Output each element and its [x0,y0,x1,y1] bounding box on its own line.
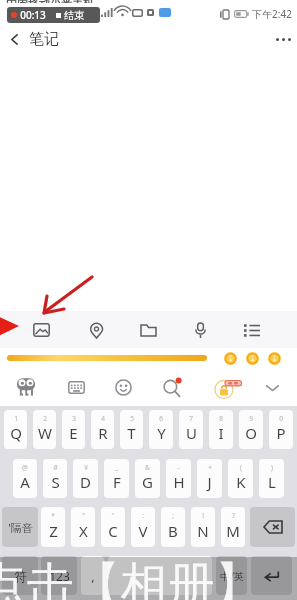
staticText: ! [202,511,204,520]
button[interactable]: - [166,459,191,498]
staticText: K [236,472,246,492]
staticText: Y [157,423,166,443]
button[interactable]: 符 [2,556,38,595]
staticText: 下午2:42 [252,7,292,21]
staticText: # [53,463,58,472]
staticText: T [127,423,136,443]
staticText: * [51,511,55,520]
button[interactable]: ! [191,507,215,547]
button[interactable]: ; [161,507,185,547]
button[interactable]: Space [108,556,212,595]
staticText: 点击【相册】上 [0,556,269,600]
button[interactable]: 5 [120,410,143,449]
button[interactable]: 3 [62,410,85,449]
staticText: L [268,472,276,492]
button[interactable]: ( [228,459,253,498]
button[interactable]: : [131,507,155,547]
button[interactable]: 中/英 [216,556,247,595]
button[interactable]: '隔音 [2,507,38,547]
staticText: 1 [14,414,18,423]
staticText: ) [271,463,273,472]
staticText: U [186,423,197,443]
staticText: G [142,472,153,492]
staticText: '隔音 [8,520,33,535]
staticText: Q [10,423,22,443]
staticText: V [138,521,148,541]
button[interactable]: 2 [33,410,56,449]
button[interactable]: ? [221,507,245,547]
staticText: ' [112,511,114,520]
staticText: 0 [279,414,283,423]
staticText: C [108,521,118,541]
button[interactable]: More options [269,25,297,53]
staticText: @ [22,463,28,472]
button[interactable]: Location [81,315,111,345]
staticText: J [207,472,212,492]
staticText: A [20,472,30,492]
button[interactable]: Store [209,369,245,405]
staticText: 7 [189,414,193,423]
button[interactable]: 4 [91,410,114,449]
button[interactable]: 8 [209,410,233,449]
staticText: E [69,423,78,443]
button[interactable]: @ [13,459,37,498]
button[interactable]: Backspace [250,507,295,547]
button[interactable]: Back [0,25,65,53]
button[interactable]: , [81,556,104,595]
staticText: , [91,567,95,585]
staticText: + [208,463,212,472]
staticText: 笔记 [29,30,59,49]
staticText: ; [172,511,174,520]
button[interactable]: Assistant [12,373,40,401]
staticText: M [226,521,240,541]
button[interactable]: Emoji [109,373,137,401]
button[interactable]: 1 [4,410,27,449]
button[interactable]: # [43,459,67,498]
staticText: D [80,472,91,492]
button[interactable]: ) [259,459,284,498]
button[interactable]: 123 [41,556,77,595]
button[interactable]: Search [158,373,186,401]
button[interactable]: ' [101,507,125,547]
button[interactable]: Voice input [185,315,215,345]
staticText: H [173,472,185,492]
button[interactable]: 7 [179,410,203,449]
staticText: 中国移动小米手机 [6,0,94,3]
button[interactable]: " [71,507,95,547]
button[interactable]: Insert image [26,315,56,345]
staticText: O [245,423,257,443]
staticText: X [79,521,88,541]
button[interactable]: * [41,507,65,547]
button[interactable]: Hide keyboard [258,373,286,401]
button[interactable]: 0 [269,410,293,449]
staticText: ? [232,511,235,520]
staticText: R [98,423,108,443]
staticText: 6 [159,414,163,423]
staticText: Z [49,521,58,541]
staticText: 3 [72,414,76,423]
staticText: & [145,463,150,472]
button[interactable]: 9 [239,410,263,449]
staticText: 中/英 [220,569,244,583]
button[interactable]: 6 [149,410,173,449]
staticText: I [218,423,224,443]
staticText: W [38,423,52,443]
button[interactable]: Files [133,315,163,345]
button[interactable]: + [197,459,222,498]
button[interactable]: _ [104,459,129,498]
button[interactable]: & [135,459,160,498]
other: Back [8,33,21,46]
staticText: 5 [130,414,134,423]
staticText: B [168,521,178,541]
button[interactable]: Keyboard layout [62,373,90,401]
button[interactable]: ¥ [73,459,98,498]
button[interactable]: Enter [251,556,292,595]
staticText: 9 [249,414,253,423]
staticText: N [197,521,209,541]
staticText: - [177,463,180,472]
staticText: ( [240,463,242,472]
staticText: 123 [49,568,70,584]
staticText: 8 [219,414,223,423]
button[interactable]: Checklist [237,315,267,345]
staticText: 结束 [64,9,84,22]
